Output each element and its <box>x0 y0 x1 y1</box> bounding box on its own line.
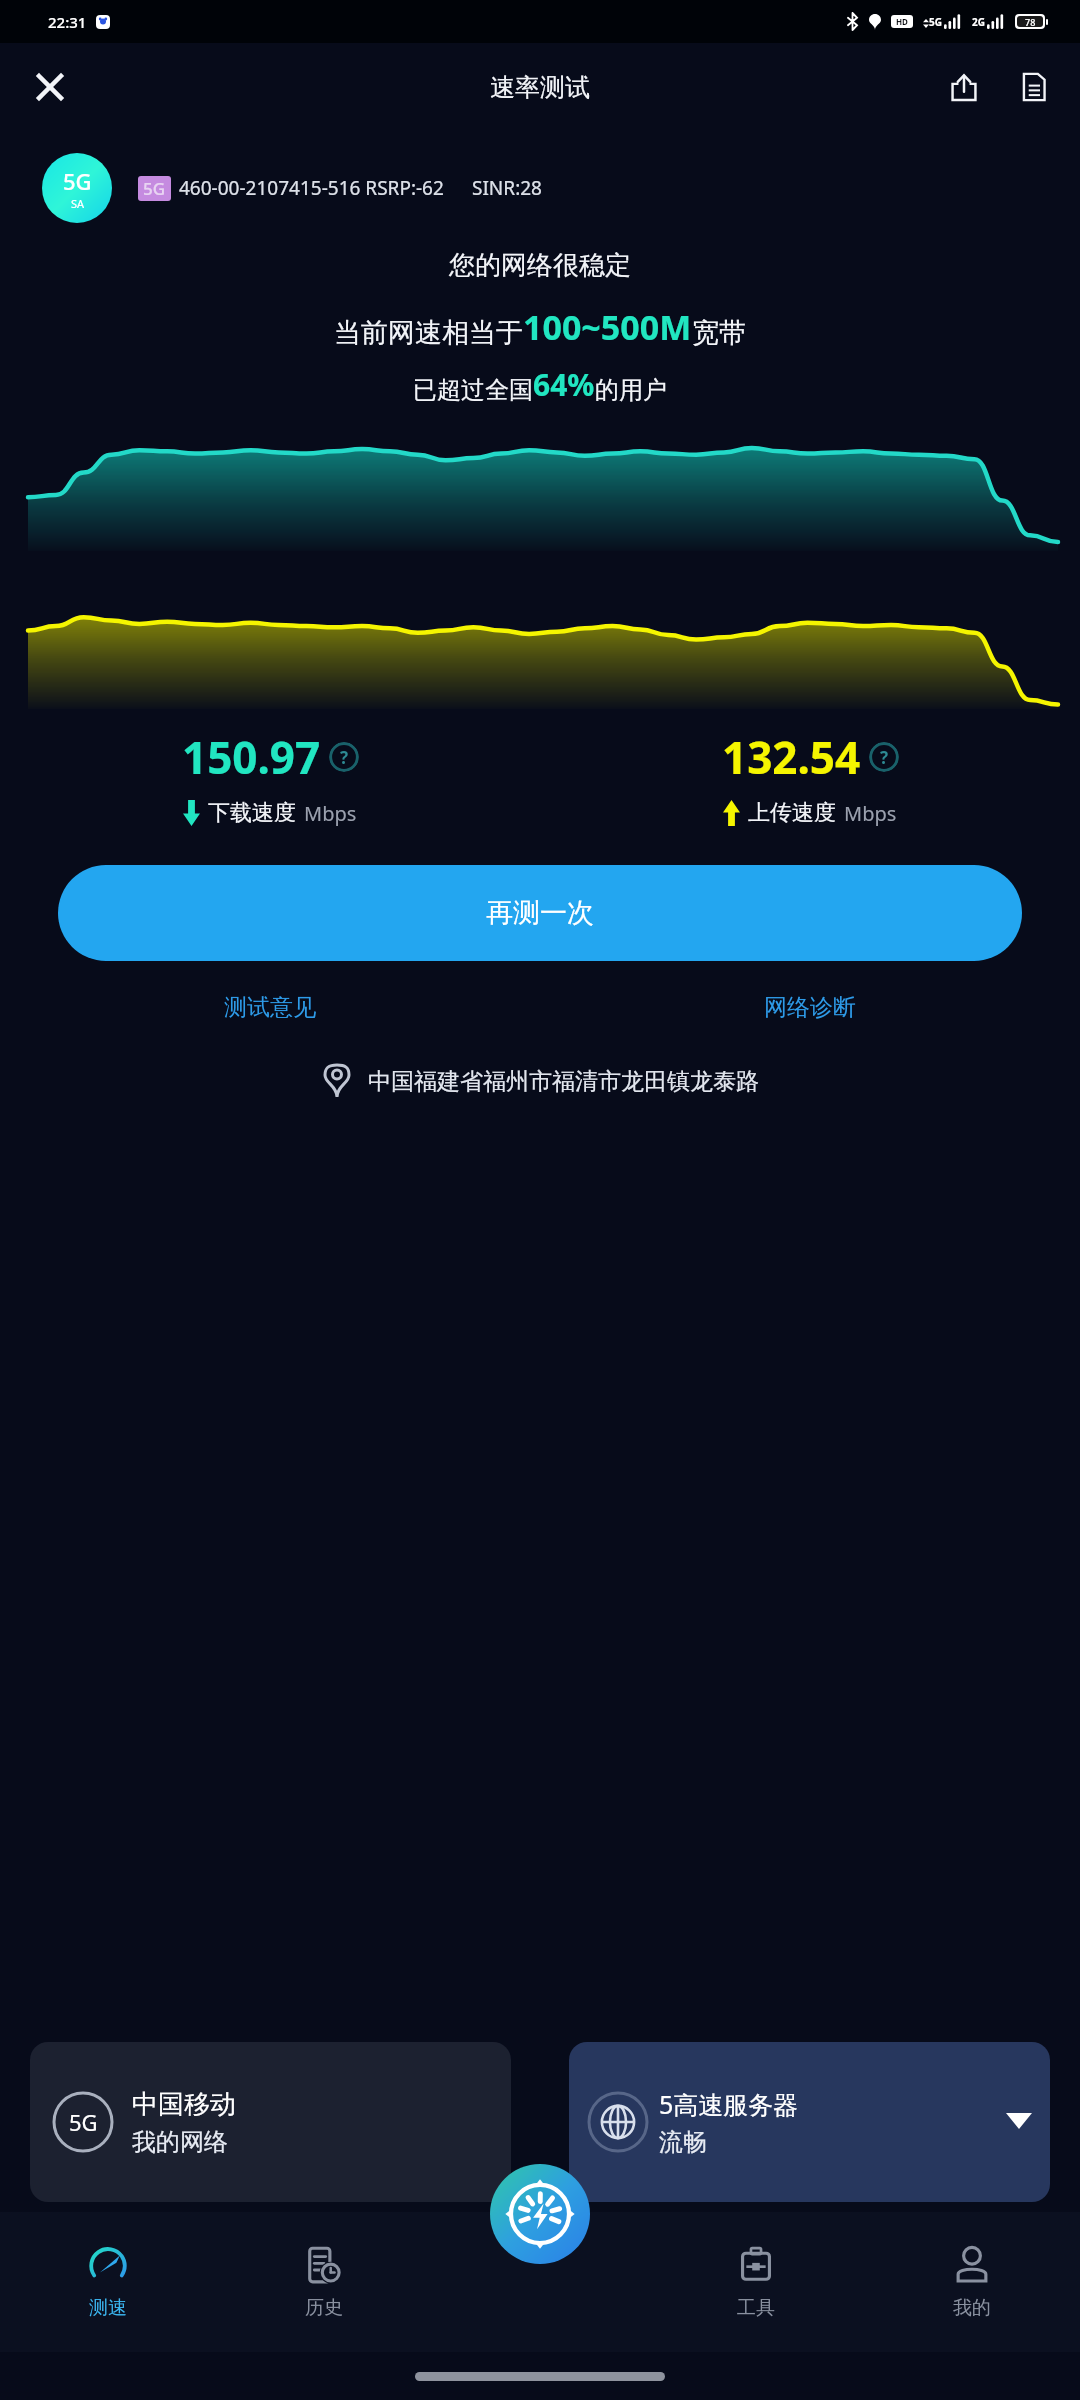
button[interactable]: 中国福建省福州市福清市龙田镇龙泰路 <box>0 1062 1080 1100</box>
button[interactable]: 测速 <box>0 2212 216 2352</box>
staticText: ? <box>340 746 349 769</box>
staticText: 再测一次 <box>486 896 594 930</box>
staticText: 网络诊断 <box>764 993 856 1022</box>
button[interactable]: 打卡测试 <box>490 2164 590 2304</box>
staticText: 历史 <box>305 2296 343 2320</box>
staticText: 中国移动 <box>132 2088 236 2121</box>
button[interactable]: 再测一次 <box>58 865 1022 961</box>
button[interactable]: Close <box>22 59 78 115</box>
button[interactable]: 网络诊断 <box>738 983 882 1032</box>
staticText: 78 <box>1025 16 1036 27</box>
staticText: SA <box>71 196 85 211</box>
staticText: 宽带 <box>692 316 746 350</box>
button[interactable]: Share <box>936 59 992 115</box>
staticText: 5高速服务器 <box>659 2087 799 2121</box>
staticText: 100~500M <box>523 304 692 350</box>
staticText: SINR:28 <box>472 175 542 201</box>
staticText: Mbps <box>304 800 357 827</box>
staticText: 已超过全国 <box>413 375 533 405</box>
staticText: 5G <box>143 177 166 200</box>
staticText: 132.54 <box>722 727 861 787</box>
staticText: 我的 <box>953 2296 991 2320</box>
staticText: 2G <box>972 15 985 29</box>
staticText: 的用户 <box>595 375 667 405</box>
button[interactable]: 5高速服务器 <box>569 2042 1050 2202</box>
staticText: 流畅 <box>659 2127 707 2157</box>
staticText: 您的网络很稳定 <box>449 249 631 282</box>
staticText: HD <box>896 16 908 27</box>
staticText: 测速 <box>89 2296 127 2320</box>
staticText: ? <box>880 746 889 769</box>
button[interactable]: 150.97 <box>0 727 540 827</box>
staticText: 460-00-2107415-516 RSRP:-62 <box>179 175 444 201</box>
staticText: 下载速度 <box>208 799 296 827</box>
staticText: 中国福建省福州市福清市龙田镇龙泰路 <box>368 1067 759 1096</box>
staticText: 我的网络 <box>132 2127 228 2157</box>
staticText: 速率测试 <box>490 72 590 103</box>
button[interactable]: 5G <box>30 2042 511 2202</box>
button[interactable]: Report <box>1006 59 1062 115</box>
staticText: 150.97 <box>182 727 321 787</box>
button[interactable]: 132.54 <box>540 727 1080 827</box>
staticText: 5G <box>63 166 92 196</box>
button[interactable]: 我的 <box>864 2212 1080 2352</box>
staticText: 5G <box>69 2107 98 2137</box>
staticText: 22:31 <box>48 12 87 32</box>
button[interactable]: 历史 <box>216 2212 432 2352</box>
staticText: 上传速度 <box>748 799 836 827</box>
button[interactable]: 测试意见 <box>198 983 342 1032</box>
staticText: 当前网速相当于 <box>334 316 523 350</box>
staticText: 5G <box>929 15 942 29</box>
staticText: Mbps <box>844 800 897 827</box>
button[interactable]: 工具 <box>648 2212 864 2352</box>
staticText: 工具 <box>737 2296 775 2320</box>
staticText: 测试意见 <box>224 993 316 1022</box>
staticText: 64% <box>533 364 595 405</box>
